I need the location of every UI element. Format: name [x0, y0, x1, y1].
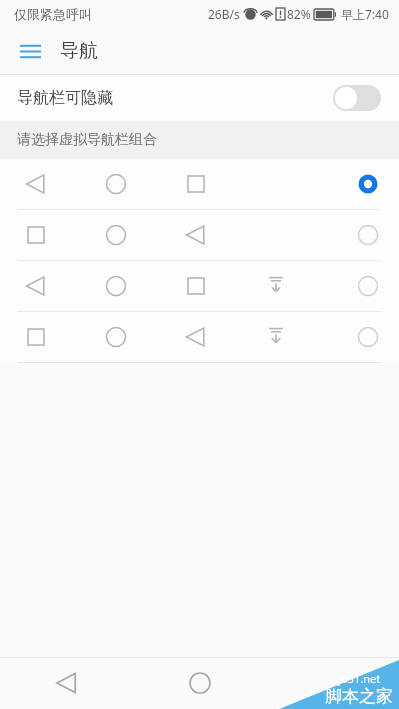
button[interactable]	[0, 159, 399, 209]
button[interactable]: 菜单	[10, 31, 50, 71]
button[interactable]	[0, 312, 399, 362]
button[interactable]: 返回	[0, 657, 133, 709]
staticText: 请选择虚拟导航栏组合	[17, 131, 157, 149]
button[interactable]: 主页	[133, 657, 266, 709]
staticText: 仅限紧急呼叫	[14, 6, 92, 22]
button[interactable]: 导航栏可隐藏开关	[333, 85, 381, 111]
staticText: jb51.net	[338, 671, 381, 686]
staticText: 82%	[287, 6, 311, 22]
button[interactable]: 导航栏可隐藏	[0, 75, 399, 121]
staticText: 导航栏可隐藏	[17, 88, 113, 108]
staticText: 脚本之家	[325, 686, 393, 707]
button[interactable]	[0, 261, 399, 311]
button[interactable]	[0, 210, 399, 260]
staticText: 早上7:40	[341, 6, 389, 22]
staticText: 导航	[60, 39, 98, 63]
staticText: 26B/s	[208, 6, 240, 22]
